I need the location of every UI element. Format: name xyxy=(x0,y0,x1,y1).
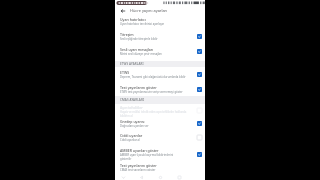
staticText: AMBER uyarı (çocuk kaçırma) bildirimleri… xyxy=(120,153,174,160)
staticText: Ciddi uyarılar xyxy=(120,133,143,138)
button[interactable]: ETWS xyxy=(115,67,205,82)
staticText: ETWS AYARLARI xyxy=(120,62,144,66)
button[interactable]: Onay kutusu xyxy=(196,86,203,93)
staticText: ETWS test yayınlarına izin verip vermeme… xyxy=(120,90,183,94)
button[interactable]: Onay kutusu xyxy=(196,151,203,158)
button[interactable]: Geri xyxy=(119,7,126,14)
staticText: Aşırı tehditler xyxy=(120,105,143,110)
button[interactable]: Onay kutusu xyxy=(196,48,203,55)
staticText: Ciddi uyarılar al xyxy=(120,138,140,142)
staticText: Test yayınlarını göster xyxy=(120,163,157,168)
staticText: Sesli uyarı mesajları xyxy=(120,47,154,52)
button[interactable]: Son kullanılanlar xyxy=(175,173,183,180)
button[interactable]: Sesli uyarı mesajları xyxy=(115,44,205,59)
button[interactable]: Ana ekran xyxy=(156,173,164,180)
staticText: Deprem, Tsunami gibi olağanüstü durumlar… xyxy=(120,75,186,79)
button[interactable]: Klavyeyi gizle xyxy=(119,173,127,180)
staticText: Test yayınlarını göster xyxy=(120,85,157,90)
button[interactable]: Onay kutusu xyxy=(196,120,203,127)
button[interactable]: AMBER uyarıları göster xyxy=(115,145,205,163)
staticText: CMAS AYARLARI xyxy=(120,98,145,102)
button[interactable]: Test yayınlarını göster xyxy=(115,163,205,171)
button[interactable]: Gnrdep uyarısı xyxy=(115,117,205,130)
staticText: Titreşim xyxy=(120,32,134,37)
button[interactable]: Aşırı tehditler xyxy=(115,104,205,117)
button[interactable]: Onay kutusu xyxy=(196,71,203,78)
button[interactable]: Titreşim xyxy=(115,29,205,44)
button[interactable]: Geri xyxy=(137,173,145,180)
staticText: Metni sesli düzeye çevir mesajları xyxy=(120,52,162,56)
staticText: Gnrdep uyarısı xyxy=(120,119,145,124)
staticText: ETWS xyxy=(120,70,130,75)
staticText: Hücre yayını ayarları xyxy=(130,8,168,13)
staticText: Uyarı hatırlatıcı xyxy=(120,17,146,22)
staticText: AMBER uyarıları göster xyxy=(120,148,159,153)
staticText: Hayatı ve mülkü tehdit eden aşırı tehlik… xyxy=(120,110,193,117)
button[interactable]: Onay kutusu xyxy=(196,134,203,141)
staticText: Uyarı hatırlatıcı tercihinizi ayarlayın xyxy=(120,22,165,26)
button[interactable]: Uyarı hatırlatıcı xyxy=(115,14,205,29)
staticText: CMAS test yayınlarını göster xyxy=(120,168,156,171)
button[interactable]: Test yayınlarını göster xyxy=(115,82,205,96)
button[interactable]: Ciddi uyarılar xyxy=(115,130,205,145)
button[interactable]: Onay kutusu xyxy=(196,33,203,40)
staticText: Sesli eşliğinde titreşimle bildir xyxy=(120,37,158,41)
staticText: Doğrudan uyarıları ver xyxy=(120,124,149,128)
